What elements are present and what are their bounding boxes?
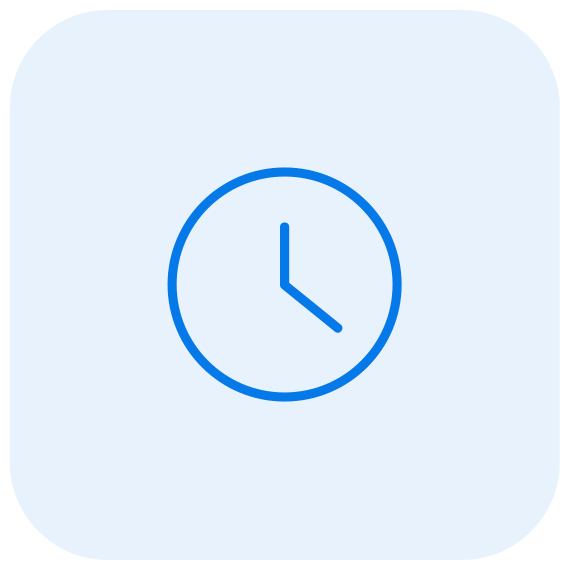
button[interactable]: Clock (10, 10, 560, 560)
